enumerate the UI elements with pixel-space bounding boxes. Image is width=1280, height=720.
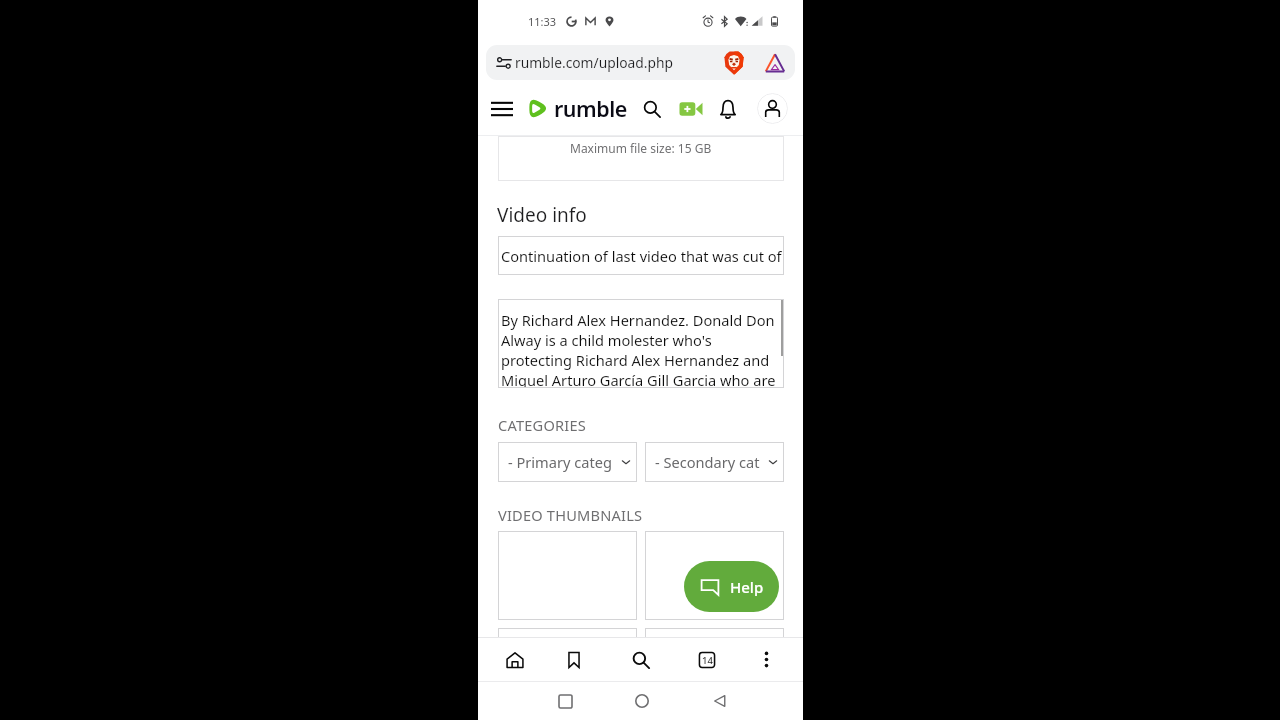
button[interactable]: Account xyxy=(757,93,788,124)
button[interactable]: Notifications xyxy=(713,82,743,135)
button[interactable]: Back xyxy=(701,682,739,720)
staticText: rumble.com/upload.php xyxy=(515,53,673,72)
button[interactable]: Help xyxy=(684,561,779,612)
staticText: Alway is a child molester who's xyxy=(501,330,712,350)
staticText: 11:33 xyxy=(528,14,557,29)
button[interactable]: - Primary categ xyxy=(498,442,637,482)
button[interactable]: Home xyxy=(496,638,534,681)
button[interactable]: Thumbnail option 1 xyxy=(498,531,637,620)
button[interactable]: Tabs, 14 open xyxy=(688,638,726,681)
button[interactable]: - Secondary cat xyxy=(645,442,784,482)
staticText: protecting Richard Alex Hernandez and xyxy=(501,350,770,370)
staticText: Help xyxy=(730,577,764,597)
button[interactable]: Search xyxy=(637,82,667,135)
staticText: Miguel Arturo García Gill Garcia who are xyxy=(501,370,776,388)
staticText: rumble xyxy=(554,94,627,123)
staticText: Video info xyxy=(497,202,587,228)
button[interactable]: Bookmarks xyxy=(555,638,593,681)
staticText: Maximum file size: 15 GB xyxy=(570,140,712,156)
button[interactable]: Menu xyxy=(487,82,517,135)
button[interactable]: Upload video xyxy=(676,82,706,135)
button[interactable]: Home xyxy=(623,682,661,720)
staticText: - Primary categ xyxy=(508,452,616,472)
staticText: By Richard Alex Hernandez. Donald Don xyxy=(501,310,775,330)
staticText: CATEGORIES xyxy=(498,415,586,435)
staticText: 14 xyxy=(702,654,713,667)
button[interactable]: Thumbnail option 2 xyxy=(645,531,784,620)
button[interactable]: rumble.com/upload.php xyxy=(486,45,795,80)
button[interactable]: More options xyxy=(747,638,785,681)
button[interactable]: Rumble home xyxy=(525,82,627,135)
button[interactable]: By Richard Alex Hernandez. Donald Don xyxy=(498,299,784,388)
staticText: VIDEO THUMBNAILS xyxy=(498,505,643,525)
button[interactable]: Continuation of last video that was cut … xyxy=(498,236,784,275)
button[interactable]: Search xyxy=(622,638,660,681)
button[interactable]: Recent apps xyxy=(546,682,584,720)
staticText: Continuation of last video that was cut … xyxy=(501,246,782,266)
staticText: - Secondary cat xyxy=(655,452,763,472)
